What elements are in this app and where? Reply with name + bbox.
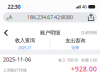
staticText: 账户明细 (40, 29, 60, 36)
staticText: 2025-11-06 (3, 56, 31, 63)
button[interactable]: Page settings (3, 12, 15, 22)
staticText: 2025-11 (18, 45, 31, 50)
staticText: A (9, 14, 12, 21)
button[interactable]: Back (0, 27, 11, 38)
staticText: 上海银行转账 (3, 68, 27, 72)
staticText: 22:30 (7, 3, 20, 10)
button[interactable]: Share (85, 12, 97, 22)
staticText: 全部 (71, 45, 79, 50)
staticText: 4G (82, 4, 87, 9)
staticText: 交易明细 (81, 30, 97, 35)
button[interactable]: 交易明细 (78, 28, 100, 37)
staticText: 支出查询 (65, 37, 85, 44)
staticText: +928.00 (71, 64, 97, 73)
button[interactable]: 支出查询 (50, 38, 100, 50)
button[interactable]: 收入查询 (0, 38, 50, 50)
staticText: 收入 928.00 余额 6.00 (58, 57, 97, 62)
staticText: a (6, 15, 8, 21)
staticText: 收入查询 (15, 37, 35, 44)
staticText: 186.234.67.42:8080 (27, 14, 73, 21)
button[interactable]: 2025-11-06 (0, 55, 100, 75)
